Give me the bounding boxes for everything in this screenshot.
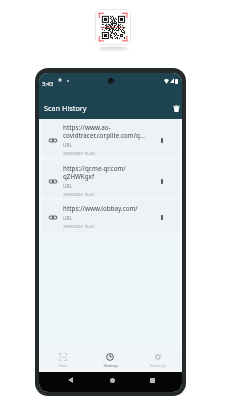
button[interactable]: Settings: [134, 349, 182, 372]
staticText: https://www.lobbay.com/: [63, 204, 138, 212]
staticText: https://qr.me-qr.com/: [63, 164, 126, 172]
button[interactable]: More options: [157, 212, 167, 222]
button[interactable]: Scan: [39, 349, 86, 372]
staticText: 29/8/2025 15:41: [63, 192, 95, 198]
button[interactable]: Recents: [145, 373, 159, 387]
button[interactable]: https://qr.me-qr.com/: [42, 160, 180, 198]
button[interactable]: Home: [105, 373, 119, 387]
button[interactable]: Back: [63, 373, 77, 387]
staticText: URL: [63, 215, 73, 222]
button[interactable]: More options: [157, 176, 167, 186]
button[interactable]: Delete history: [170, 102, 182, 115]
staticText: Scan History: [44, 103, 87, 113]
staticText: 29/8/2025 15:41: [63, 224, 95, 230]
staticText: covidtracer.corplite.com/q...: [63, 131, 145, 139]
staticText: URL: [63, 142, 73, 149]
button[interactable]: More options: [157, 135, 167, 145]
staticText: History: [103, 363, 118, 369]
staticText: https://www.ao-: [63, 123, 111, 131]
staticText: Scan: [58, 363, 68, 369]
button[interactable]: https://www.ao-: [42, 119, 180, 157]
staticText: qZHWKgxf: [63, 172, 95, 180]
staticText: URL: [63, 183, 73, 190]
staticText: 3:43: [42, 80, 54, 88]
button[interactable]: History: [86, 349, 134, 372]
staticText: 29/8/2025 15:43: [63, 151, 95, 157]
button[interactable]: https://www.lobbay.com/: [42, 200, 180, 233]
staticText: Settings: [150, 363, 166, 369]
